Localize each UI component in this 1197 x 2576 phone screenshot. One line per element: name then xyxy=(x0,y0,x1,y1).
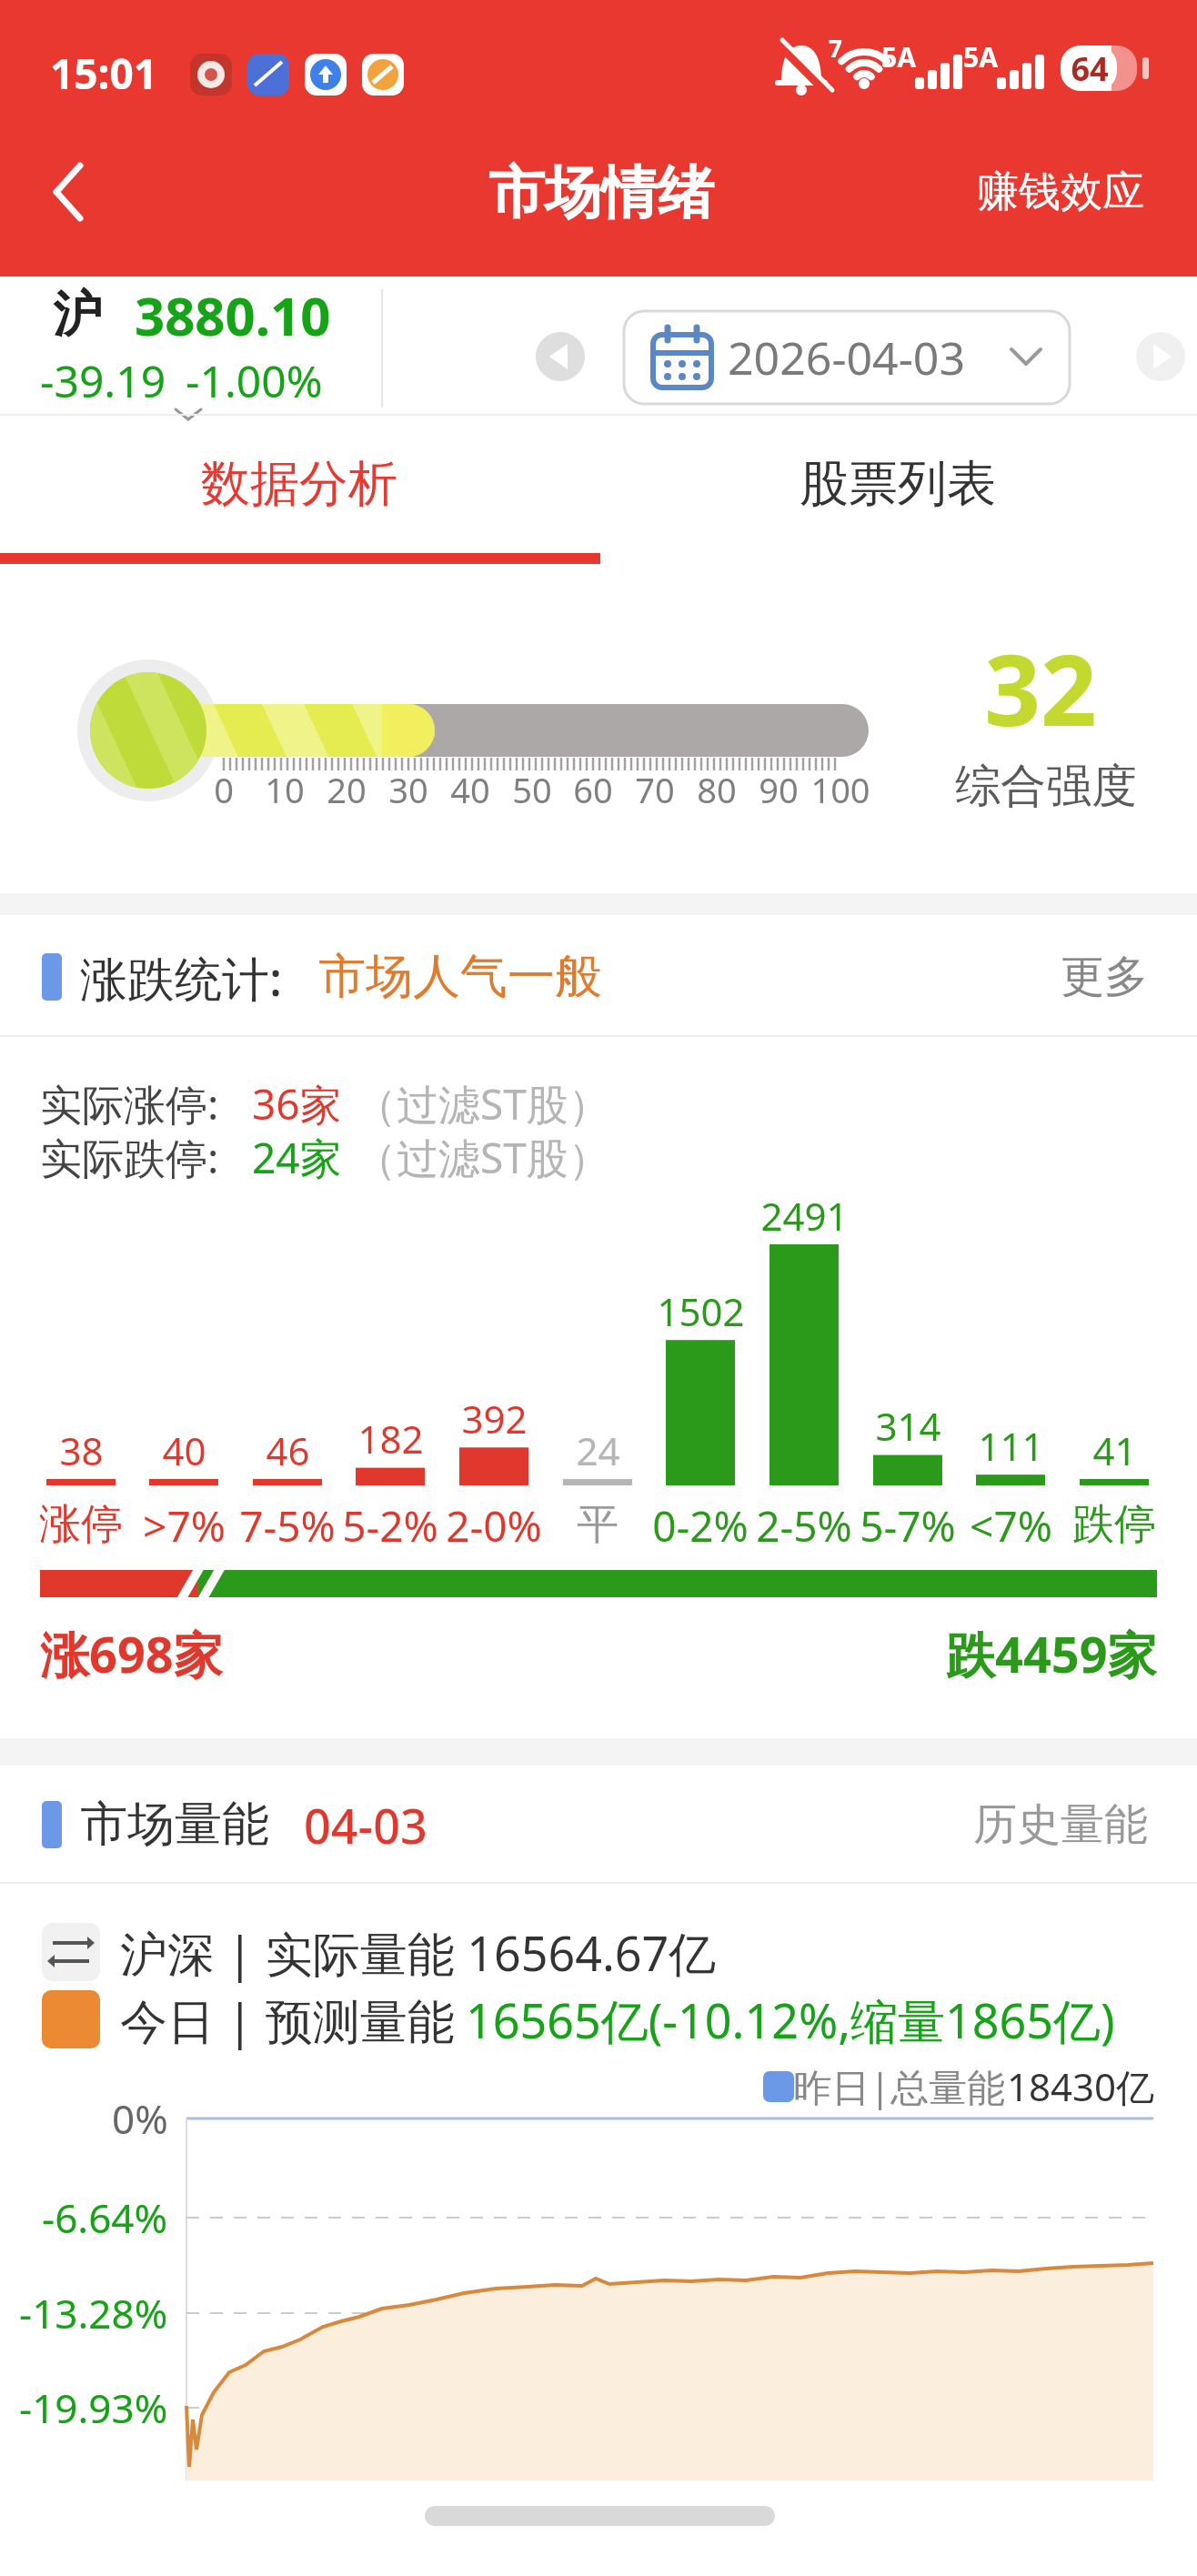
staticText: 0% xyxy=(112,2091,168,2146)
staticText: 5-2% xyxy=(342,1497,438,1552)
staticText: 综合强度 xyxy=(955,758,1137,815)
button[interactable] xyxy=(36,155,109,232)
staticText: 100 xyxy=(810,766,870,813)
staticText: 30 xyxy=(388,766,428,813)
staticText: 股票列表 xyxy=(800,453,996,515)
staticText: 市场情绪 xyxy=(488,157,714,228)
staticText: 赚钱效应 xyxy=(977,166,1144,218)
staticText: 64 xyxy=(1071,46,1109,91)
staticText: 涨停 xyxy=(39,1498,123,1551)
staticText: -13.28% xyxy=(19,2286,168,2340)
staticText: 80 xyxy=(697,766,737,813)
staticText: 70 xyxy=(635,766,675,813)
staticText: 今日 | 预测量能 xyxy=(120,1987,468,2052)
staticText: 1502 xyxy=(657,1285,745,1336)
staticText: 2491 xyxy=(760,1190,849,1241)
staticText: 182 xyxy=(357,1413,424,1464)
staticText: 5A xyxy=(963,38,998,75)
staticText: 36家 xyxy=(252,1075,342,1132)
button[interactable]: 更多 xyxy=(919,937,1148,1017)
staticText: （过滤ST股） xyxy=(355,1075,610,1132)
staticText: 392 xyxy=(461,1393,528,1444)
staticText: 314 xyxy=(875,1400,941,1451)
staticText: 90 xyxy=(759,766,799,813)
staticText: 5-7% xyxy=(860,1497,956,1552)
staticText: 涨跌统计: xyxy=(80,945,283,1010)
staticText: 5A xyxy=(881,38,916,75)
staticText: 涨698家 xyxy=(40,1620,223,1687)
staticText: 40 xyxy=(162,1424,206,1475)
staticText: >7% xyxy=(143,1497,226,1552)
staticText: 32 xyxy=(984,621,1097,755)
staticText: -39.19 xyxy=(40,351,166,410)
staticText: 历史量能 xyxy=(973,1797,1148,1852)
button[interactable] xyxy=(509,331,560,382)
staticText: 跌4459家 xyxy=(946,1620,1157,1687)
staticText: 市场人气一般 xyxy=(318,947,602,1007)
staticText: 20 xyxy=(327,766,367,813)
staticText: （过滤ST股） xyxy=(355,1129,610,1186)
staticText: 111 xyxy=(978,1420,1044,1471)
staticText: 3880.10 xyxy=(135,279,331,351)
staticText: 24 xyxy=(576,1424,620,1475)
staticText: 实际跌停: xyxy=(40,1129,219,1186)
staticText: 跌停 xyxy=(1072,1498,1156,1551)
button[interactable]: 赚钱效应 xyxy=(946,153,1164,231)
staticText: 0-2% xyxy=(652,1497,749,1552)
staticText: 沪 xyxy=(53,284,102,346)
staticText: 10 xyxy=(265,766,305,813)
staticText: 15:01 xyxy=(50,45,158,102)
button[interactable]: 股票列表 xyxy=(598,417,1197,551)
staticText: 7 xyxy=(829,32,842,64)
staticText: 昨日|总量能 xyxy=(793,2060,1006,2112)
staticText: 2-0% xyxy=(446,1497,542,1552)
staticText: -6.64% xyxy=(42,2190,168,2245)
staticText: 41 xyxy=(1092,1424,1137,1475)
staticText: <7% xyxy=(970,1497,1052,1552)
staticText: 7-5% xyxy=(239,1497,336,1552)
staticText: 市场量能 xyxy=(80,1795,269,1855)
staticText: 数据分析 xyxy=(201,453,397,515)
staticText: -19.93% xyxy=(19,2380,168,2435)
staticText: 实际涨停: xyxy=(40,1075,219,1132)
staticText: 38 xyxy=(59,1424,104,1475)
staticText: -1.00% xyxy=(186,351,323,410)
button[interactable]: 数据分析 xyxy=(0,417,598,551)
button[interactable]: 历史量能 xyxy=(919,1785,1148,1865)
staticText: 平 xyxy=(577,1498,619,1551)
staticText: 04-03 xyxy=(304,1793,427,1857)
staticText: 2-5% xyxy=(756,1497,852,1552)
staticText: 2026-04-03 xyxy=(728,327,965,388)
staticText: 50 xyxy=(512,766,552,813)
staticText: 40 xyxy=(450,766,490,813)
staticText: 16565亿(-10.12%,缩量1865亿) xyxy=(466,1987,1115,2052)
staticText: 沪深 | 实际量能 16564.67亿 xyxy=(120,1920,717,1985)
staticText: 18430亿 xyxy=(1007,2060,1155,2112)
staticText: 更多 xyxy=(1061,950,1148,1004)
button[interactable] xyxy=(624,311,1070,404)
staticText: 24家 xyxy=(252,1129,342,1186)
staticText: 0 xyxy=(214,766,234,813)
staticText: 46 xyxy=(266,1424,310,1475)
staticText: 60 xyxy=(573,766,613,813)
